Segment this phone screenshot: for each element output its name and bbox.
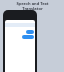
button[interactable] [26,30,34,34]
button[interactable] [22,35,34,39]
staticText: Translator [22,6,43,11]
staticText: Speech and Text [16,1,49,6]
